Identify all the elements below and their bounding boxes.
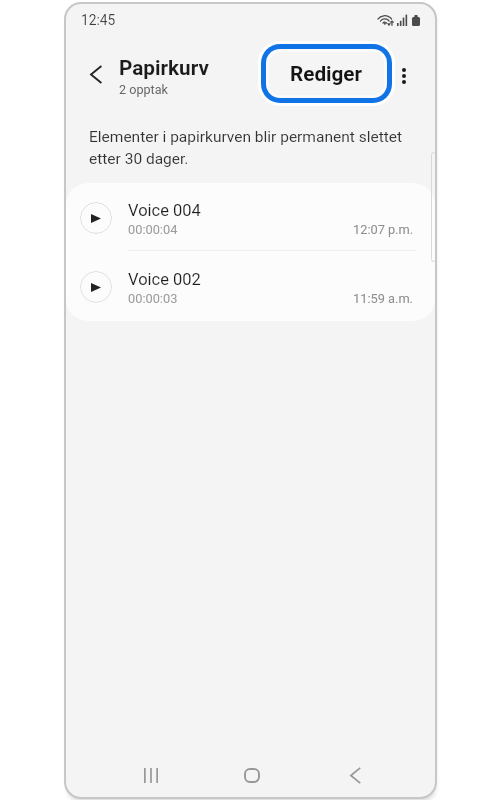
staticText: Elementer i papirkurven blir permanent s…: [89, 128, 411, 167]
button[interactable]: Home: [230, 754, 273, 797]
staticText: Voice 002: [128, 270, 201, 289]
button[interactable]: Play Voice 004: [80, 202, 112, 234]
staticText: 12:07 p.m.: [353, 222, 414, 237]
staticText: 2 opptak: [119, 82, 168, 97]
staticText: Voice 004: [128, 201, 201, 220]
button[interactable]: More options: [388, 60, 420, 92]
button[interactable]: Back: [78, 57, 113, 92]
button[interactable]: Rediger: [269, 52, 384, 95]
button[interactable]: Play Voice 002: [66, 252, 435, 321]
staticText: Rediger: [290, 62, 363, 86]
button[interactable]: Back: [334, 754, 377, 797]
button[interactable]: Play Voice 004: [66, 183, 435, 252]
button[interactable]: Play Voice 002: [80, 271, 112, 303]
staticText: 00:00:04: [128, 222, 178, 237]
staticText: 11:59 a.m.: [353, 291, 413, 306]
staticText: 12:45: [81, 12, 116, 28]
staticText: 00:00:03: [128, 291, 178, 306]
staticText: Papirkurv: [119, 56, 209, 80]
button[interactable]: Recent apps: [129, 754, 172, 797]
